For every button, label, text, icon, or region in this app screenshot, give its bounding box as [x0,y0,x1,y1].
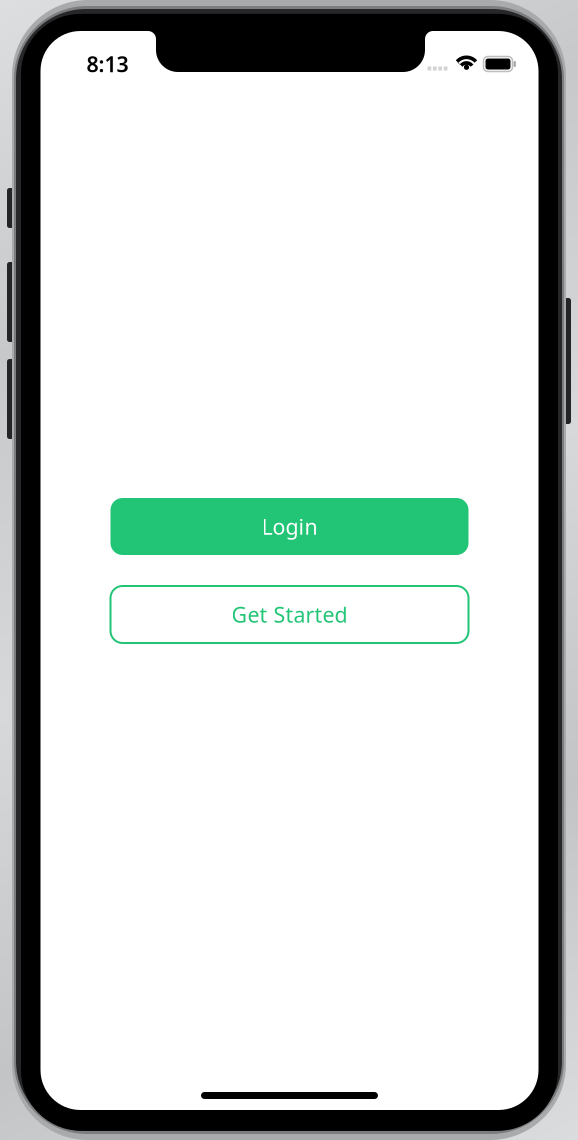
button[interactable]: Login [110,498,468,555]
staticText: Login [261,512,317,541]
button[interactable]: Get Started [110,586,468,643]
staticText: Get Started [231,600,347,629]
staticText: 8:13 [86,50,128,78]
